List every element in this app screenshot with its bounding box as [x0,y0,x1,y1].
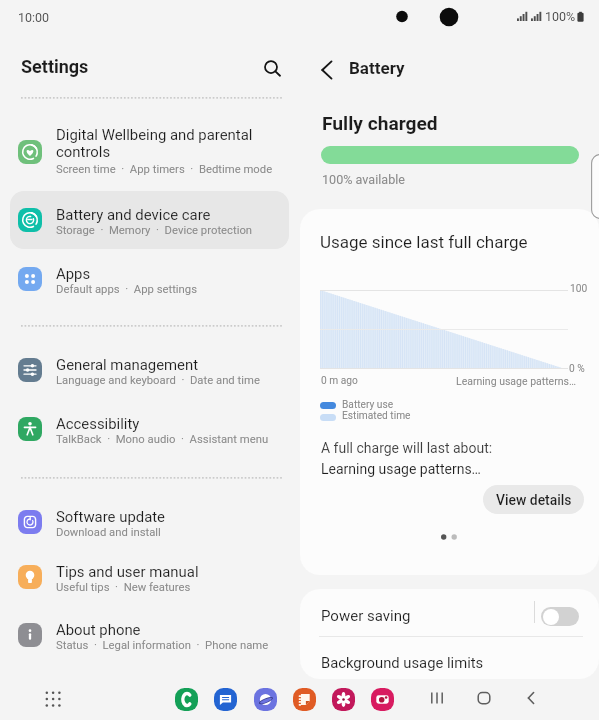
button[interactable]: Home [468,682,500,714]
staticText: 100% available [322,172,405,187]
staticText: Tips and user manual [56,563,199,580]
staticText: 0 % [569,363,585,375]
button[interactable] [300,589,599,636]
staticText: Default apps · App settings [56,283,198,296]
staticText: Battery use [342,399,394,411]
button[interactable] [300,637,599,679]
staticText: General management [56,356,199,373]
staticText: Download and install [56,526,161,539]
button[interactable]: internet [254,688,277,711]
button[interactable]: Recents [421,682,453,714]
staticText: About phone [56,621,141,638]
staticText: 100% [545,9,576,24]
staticText: 100 [570,283,588,295]
staticText: Power saving [321,607,411,625]
staticText: A full charge will last about: [321,440,493,456]
button[interactable]: View details [483,485,584,514]
button[interactable] [10,341,289,399]
staticText: Status · Legal information · Phone name [56,639,269,652]
button[interactable]: camera [371,688,394,711]
staticText: Estimated time [342,410,411,422]
staticText: Software update [56,508,166,525]
staticText: Settings [21,56,89,77]
button[interactable]: Search [257,55,289,87]
button[interactable] [10,606,289,664]
button[interactable]: notes [293,688,316,711]
staticText: Language and keyboard · Date and time [56,374,260,387]
button[interactable] [10,119,289,187]
button[interactable]: Back [307,50,347,90]
button[interactable] [10,400,289,458]
button[interactable]: All apps [38,684,68,714]
button[interactable]: phone [175,688,198,711]
staticText: Usage since last full charge [320,232,528,252]
staticText: controls [56,143,111,160]
staticText: Useful tips · New features [56,581,191,594]
staticText: Accessibility [56,415,140,432]
staticText: Storage · Memory · Device protection [56,224,253,237]
button[interactable]: Back [515,682,547,714]
button[interactable] [10,493,289,551]
staticText: Background usage limits [321,654,484,671]
staticText: 0 m ago [321,375,358,387]
staticText: Apps [56,265,91,282]
button[interactable] [10,548,289,606]
button[interactable]: messages [214,688,237,711]
staticText: Digital Wellbeing and parental [56,126,253,143]
button[interactable]: gallery [332,688,355,711]
staticText: Learning usage patterns… [456,375,576,387]
button[interactable] [10,250,289,308]
staticText: Fully charged [322,112,438,135]
staticText: TalkBack · Mono audio · Assistant menu [56,433,269,446]
staticText: Screen time · App timers · Bedtime mode [56,163,273,176]
staticText: Battery [349,58,405,78]
staticText: View details [496,492,572,508]
button[interactable] [10,191,289,249]
button[interactable]: Power saving toggle [541,607,579,626]
staticText: 10:00 [18,10,50,25]
staticText: Learning usage patterns… [321,461,481,477]
staticText: Battery and device care [56,206,211,223]
